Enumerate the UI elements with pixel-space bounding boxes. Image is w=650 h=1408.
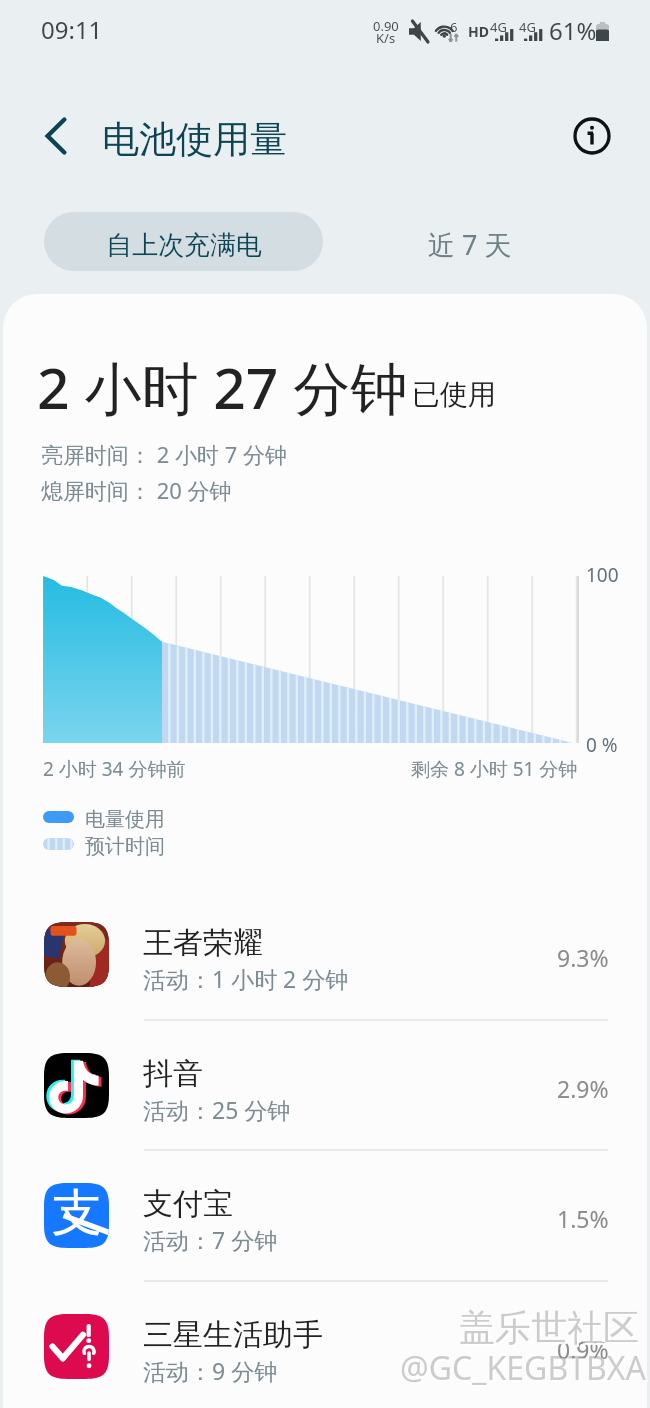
- button[interactable]: Information: [564, 108, 620, 164]
- button[interactable]: 近 7 天: [330, 212, 609, 271]
- staticText: 已使用: [412, 377, 496, 412]
- staticText: 三星生活助手: [143, 1316, 323, 1354]
- staticText: 预计时间: [85, 834, 165, 859]
- staticText: 9.3%: [557, 942, 609, 973]
- staticText: @GC_KEGBTBXA: [400, 1346, 646, 1390]
- staticText: K/s: [376, 29, 396, 47]
- staticText: 4G: [490, 18, 507, 36]
- staticText: 活动：9 分钟: [143, 1355, 278, 1386]
- staticText: 自上次充满电: [106, 229, 262, 262]
- button[interactable]: 支: [0, 1151, 650, 1281]
- staticText: @GC_KEGBTBXA: [402, 1348, 648, 1392]
- staticText: 抖音: [143, 1055, 203, 1093]
- staticText: 6: [450, 18, 458, 36]
- staticText: 支: [52, 1183, 102, 1245]
- staticText: 亮屏时间： 2 小时 7 分钟: [41, 439, 288, 469]
- staticText: 0 %: [586, 732, 618, 758]
- staticText: 活动：7 分钟: [143, 1224, 278, 1255]
- staticText: 2 小时 27 分钟: [37, 348, 408, 426]
- button[interactable]: 抖音: [0, 1021, 650, 1151]
- staticText: 61%: [549, 14, 597, 47]
- staticText: 100: [586, 562, 619, 588]
- staticText: 盖乐世社区: [459, 1305, 639, 1350]
- staticText: HD: [468, 22, 489, 41]
- staticText: 1.5%: [557, 1203, 609, 1234]
- staticText: 活动：1 小时 2 分钟: [143, 963, 349, 994]
- staticText: 0.90: [373, 17, 399, 35]
- staticText: 王者荣耀: [143, 924, 263, 962]
- staticText: 支付宝: [143, 1185, 233, 1223]
- staticText: 熄屏时间： 20 分钟: [41, 475, 232, 505]
- staticText: 盖乐世社区: [461, 1307, 641, 1352]
- staticText: 电池使用量: [102, 116, 287, 163]
- staticText: 电量使用: [85, 807, 165, 832]
- button[interactable]: Back: [28, 108, 84, 164]
- staticText: 4G: [519, 18, 536, 36]
- button[interactable]: 王者荣耀: [0, 890, 650, 1020]
- staticText: 2 小时 34 分钟前: [43, 756, 186, 782]
- staticText: 09:11: [41, 13, 103, 46]
- staticText: 0.9%: [557, 1334, 609, 1365]
- staticText: 活动：25 分钟: [143, 1094, 291, 1125]
- staticText: 2.9%: [557, 1073, 609, 1104]
- button[interactable]: 三星生活助手: [0, 1282, 650, 1408]
- button[interactable]: 自上次充满电: [44, 212, 323, 271]
- staticText: 近 7 天: [428, 226, 512, 263]
- staticText: 剩余 8 小时 51 分钟: [411, 756, 578, 782]
